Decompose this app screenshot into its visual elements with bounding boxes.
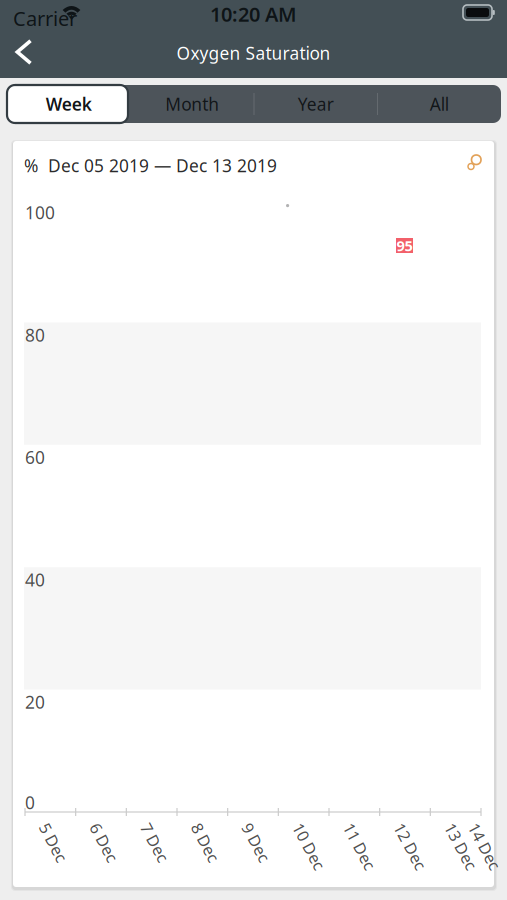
staticText: % [24,154,38,177]
staticText: 13 Dec [458,819,507,840]
staticText: 0 [25,791,35,814]
staticText: 7 Dec [154,819,196,840]
staticText: Oxygen Saturation [176,41,330,64]
staticText: Dec 05 2019 — Dec 13 2019 [48,154,277,177]
staticText: 20 [25,691,45,714]
button[interactable]: Month [130,85,254,123]
staticText: 14 Dec [482,819,507,840]
staticText: 10:20 AM [210,1,297,27]
staticText: 5 Dec [53,819,95,840]
staticText: 95 [396,236,412,255]
button[interactable]: Year [254,85,377,123]
button[interactable]: Week [7,85,130,123]
staticText: 80 [25,323,45,346]
staticText: 11 Dec [357,819,408,840]
staticText: All [430,92,449,115]
staticText: Week [46,92,92,115]
staticText: 12 Dec [408,819,459,840]
staticText: 40 [25,568,45,591]
staticText: Year [298,92,334,115]
staticText: 100 [25,201,55,224]
staticText: 8 Dec [205,819,247,840]
staticText: Carrier [13,5,77,32]
staticText: 9 Dec [256,819,298,840]
button[interactable]: Oxygen [468,155,481,169]
staticText: Month [165,92,219,115]
button[interactable]: All [377,85,501,123]
staticText: 60 [25,446,45,469]
staticText: 10 Dec [306,819,357,840]
button[interactable]: Back [2,30,46,74]
staticText: 6 Dec [104,819,146,840]
